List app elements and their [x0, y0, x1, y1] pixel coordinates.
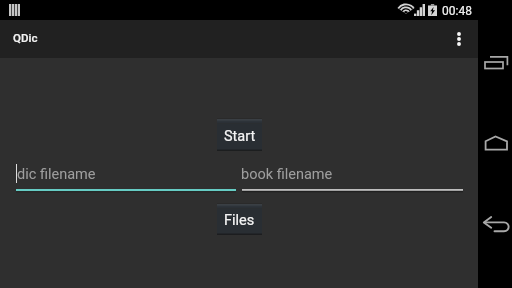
staticText: Files	[224, 212, 255, 229]
button[interactable]: Start	[217, 118, 262, 151]
button[interactable]: Files	[217, 203, 262, 235]
staticText: QDic	[13, 31, 38, 44]
staticText: Start	[224, 128, 256, 145]
staticText: 00:48	[442, 4, 472, 18]
button[interactable]: More options	[443, 20, 475, 58]
button[interactable]: book filename	[242, 162, 463, 191]
staticText: dic filename	[17, 166, 96, 183]
staticText: book filename	[241, 166, 333, 183]
button[interactable]: dic filename	[16, 162, 236, 191]
button[interactable]: Home	[478, 122, 512, 156]
button[interactable]: Back	[478, 203, 512, 237]
button[interactable]: Recents	[478, 48, 512, 82]
